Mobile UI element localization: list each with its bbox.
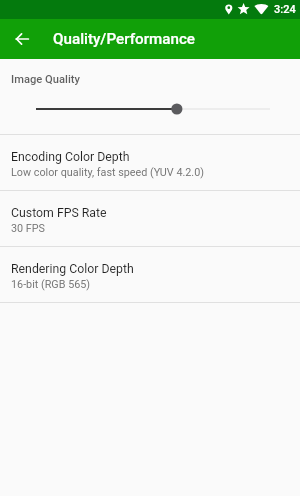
button[interactable]: Back [0, 19, 40, 59]
staticText: Rendering Color Depth [11, 262, 134, 276]
staticText: Custom FPS Rate [11, 206, 107, 220]
staticText: Low color quality, fast speed (YUV 4.2.0… [11, 166, 205, 179]
staticText: Quality/Performance [53, 30, 196, 48]
staticText: Encoding Color Depth [11, 150, 130, 164]
staticText: 30 FPS [11, 222, 46, 235]
staticText: 3:24 [274, 3, 296, 16]
staticText: Image Quality [11, 73, 80, 86]
button[interactable]: Custom FPS Rate [0, 191, 300, 246]
button[interactable]: Rendering Color Depth [0, 247, 300, 302]
staticText: 16-bit (RGB 565) [11, 278, 91, 291]
button[interactable] [0, 96, 300, 122]
button[interactable]: Encoding Color Depth [0, 135, 300, 190]
